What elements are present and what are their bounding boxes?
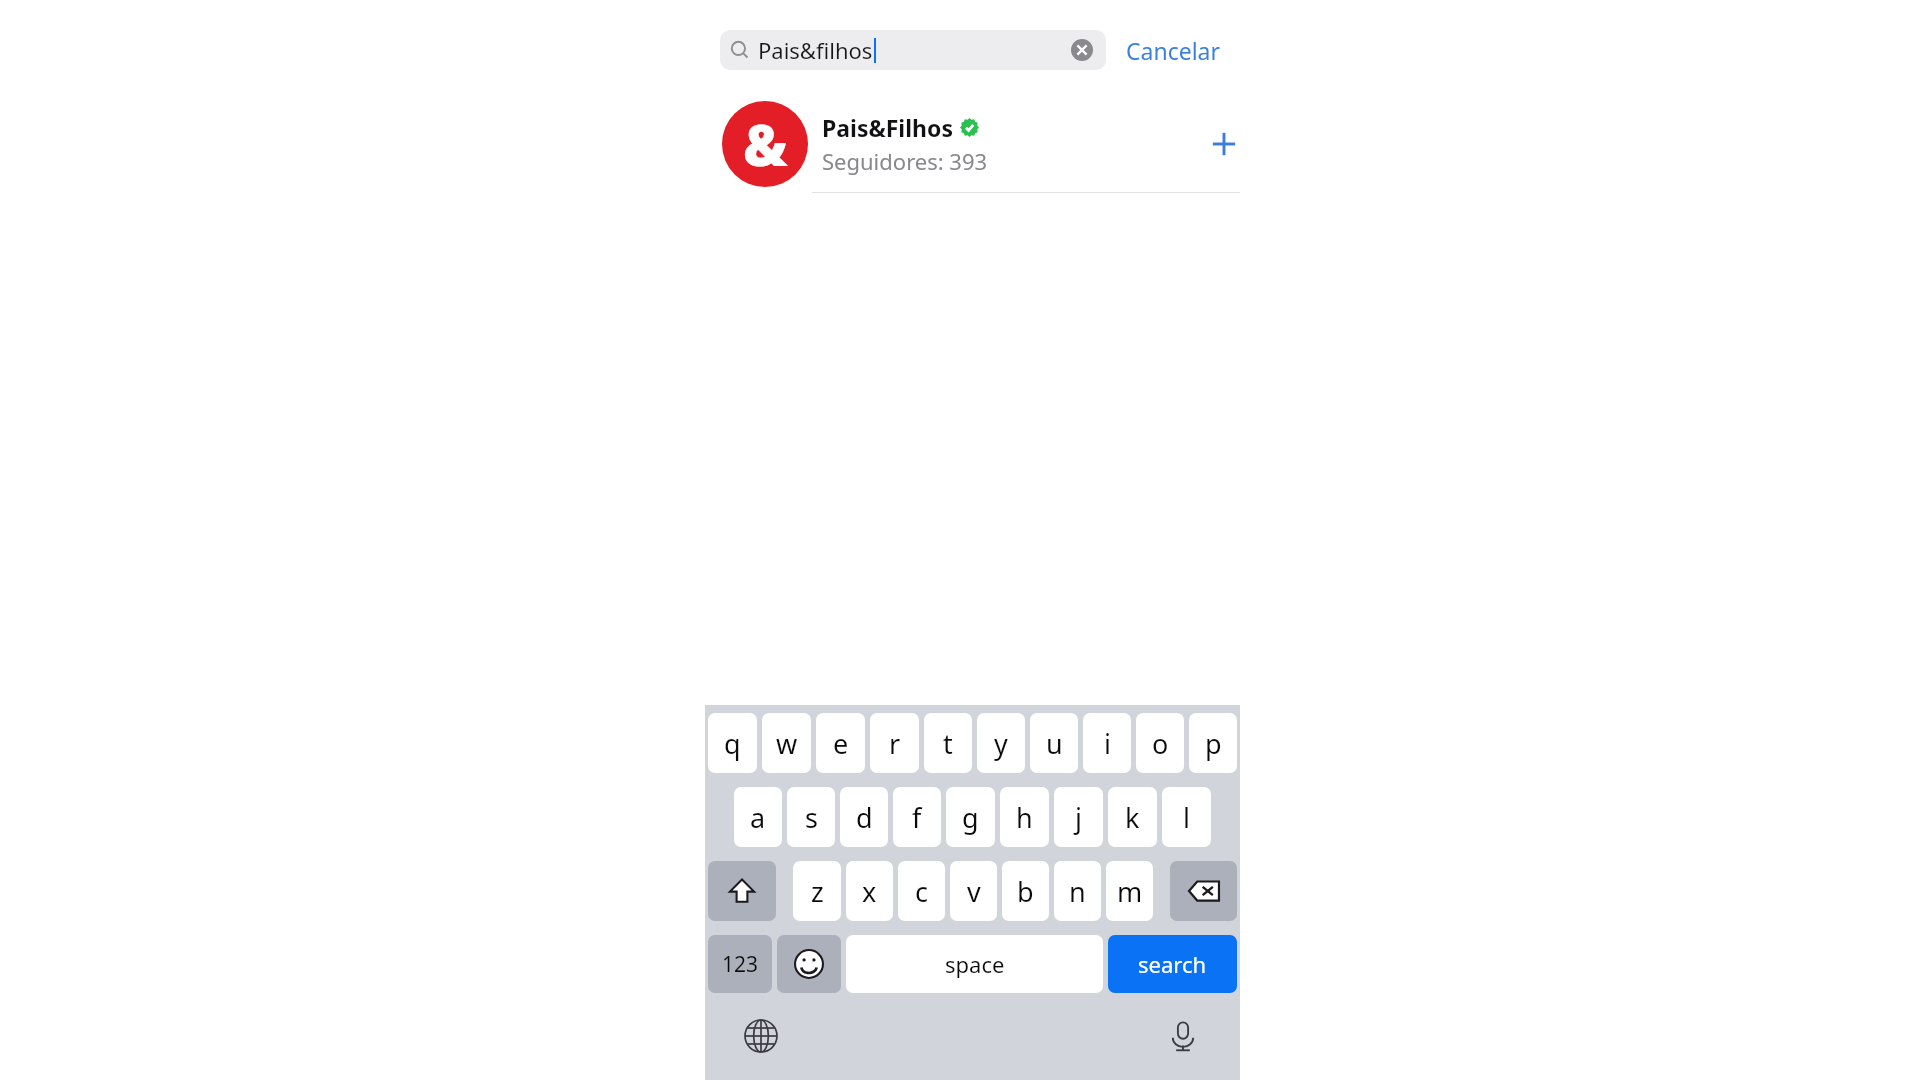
staticText: f <box>912 799 922 836</box>
staticText: v <box>967 873 981 910</box>
staticText: & <box>743 106 788 182</box>
button[interactable]: t <box>924 713 972 773</box>
staticText: q <box>724 725 741 762</box>
button[interactable]: Pais&filhos <box>720 30 1106 70</box>
button[interactable]: r <box>870 713 919 773</box>
button[interactable]: g <box>946 787 995 847</box>
button[interactable]: f <box>893 787 941 847</box>
button[interactable]: b <box>1002 861 1049 921</box>
button[interactable]: & <box>712 96 1252 192</box>
button[interactable]: v <box>950 861 997 921</box>
button[interactable]: j <box>1054 787 1103 847</box>
button[interactable]: 123 <box>708 935 772 993</box>
button[interactable]: l <box>1162 787 1211 847</box>
button[interactable]: c <box>898 861 945 921</box>
button[interactable]: w <box>762 713 811 773</box>
button[interactable]: i <box>1083 713 1131 773</box>
button[interactable]: u <box>1030 713 1078 773</box>
staticText: c <box>915 873 928 910</box>
staticText: m <box>1117 873 1143 910</box>
staticText: u <box>1046 725 1063 762</box>
staticText: space <box>945 949 1005 979</box>
button[interactable]: k <box>1108 787 1157 847</box>
staticText: g <box>962 799 979 836</box>
staticText: Pais&Filhos <box>822 112 953 143</box>
staticText: r <box>889 725 901 762</box>
button[interactable]: e <box>816 713 865 773</box>
staticText: t <box>943 725 953 762</box>
staticText: search <box>1138 949 1207 979</box>
staticText: y <box>994 725 1008 762</box>
staticText: o <box>1152 725 1169 762</box>
staticText: s <box>805 799 818 836</box>
staticText: k <box>1125 799 1140 836</box>
button[interactable]: x <box>846 861 893 921</box>
staticText: Pais&filhos <box>758 35 873 65</box>
button[interactable]: n <box>1054 861 1101 921</box>
button[interactable]: Backspace <box>1170 861 1237 921</box>
button[interactable]: o <box>1136 713 1184 773</box>
button[interactable]: z <box>793 861 841 921</box>
staticText: 123 <box>722 950 759 979</box>
button[interactable]: Clear text <box>1068 36 1096 64</box>
staticText: Seguidores: 393 <box>822 146 988 176</box>
button[interactable]: d <box>840 787 888 847</box>
staticText: l <box>1183 799 1190 836</box>
staticText: p <box>1205 725 1222 762</box>
staticText: w <box>776 725 798 762</box>
button[interactable]: s <box>787 787 835 847</box>
button[interactable]: y <box>977 713 1025 773</box>
button[interactable]: space <box>846 935 1103 993</box>
button[interactable]: Follow <box>1196 116 1252 172</box>
staticText: z <box>811 873 824 910</box>
button[interactable]: m <box>1106 861 1153 921</box>
button[interactable]: Voice input <box>1160 1013 1206 1059</box>
button[interactable]: Cancelar <box>1122 29 1225 72</box>
button[interactable]: Shift <box>708 861 776 921</box>
staticText: x <box>862 873 877 910</box>
button[interactable]: search <box>1108 935 1237 993</box>
staticText: b <box>1017 873 1034 910</box>
button[interactable]: q <box>708 713 757 773</box>
staticText: j <box>1075 799 1082 836</box>
staticText: d <box>856 799 873 836</box>
staticText: a <box>750 799 766 836</box>
staticText: n <box>1069 873 1086 910</box>
button[interactable]: a <box>734 787 782 847</box>
button[interactable]: h <box>1000 787 1049 847</box>
staticText: h <box>1016 799 1033 836</box>
staticText: i <box>1104 725 1111 762</box>
staticText: e <box>833 725 849 762</box>
button[interactable]: p <box>1189 713 1237 773</box>
button[interactable]: Emoji <box>777 935 841 993</box>
staticText: Cancelar <box>1126 35 1221 66</box>
button[interactable]: Change keyboard language <box>738 1013 784 1059</box>
